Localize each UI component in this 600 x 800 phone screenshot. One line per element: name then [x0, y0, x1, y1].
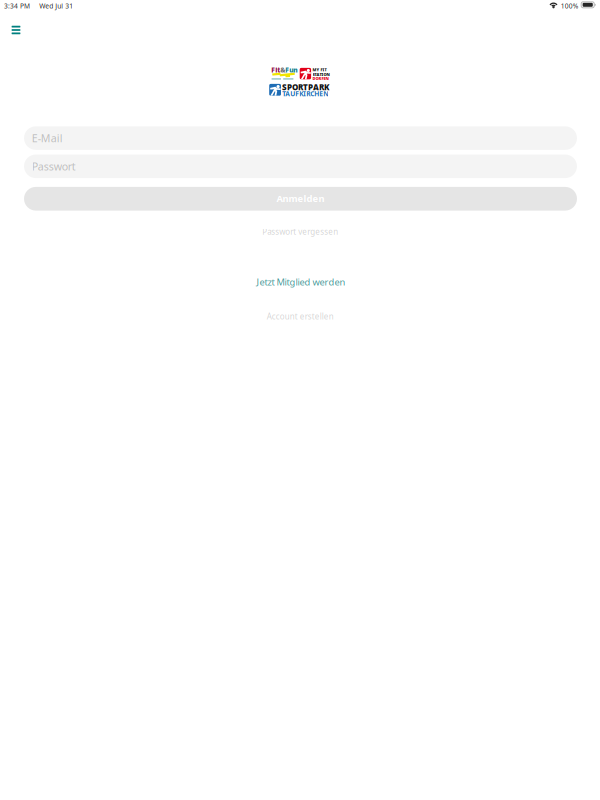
staticText: 100% — [561, 1, 579, 10]
staticText: STATION — [312, 72, 329, 77]
staticText: E-Mail — [32, 131, 63, 145]
button[interactable]: Menu — [2, 18, 30, 42]
staticText: Wed Jul 31 — [39, 1, 73, 10]
button[interactable]: Passwort — [24, 154, 577, 178]
button[interactable]: Account erstellen — [261, 309, 340, 324]
staticText: TAUFKIRCHEN — [282, 89, 328, 98]
button[interactable]: Jetzt Mitglied werden — [251, 274, 352, 290]
staticText: Account erstellen — [267, 311, 334, 322]
staticText: Anmelden — [276, 192, 324, 205]
button[interactable]: E-Mail — [24, 126, 577, 150]
staticText: 3:34 PM — [4, 1, 30, 10]
staticText: Passwort vergessen — [262, 226, 338, 237]
staticText: SPORTPARK — [282, 82, 329, 92]
staticText: Jetzt Mitglied werden — [257, 276, 346, 288]
staticText: & — [280, 65, 285, 74]
staticText: Fun — [285, 65, 297, 74]
staticText: Passwort — [32, 159, 76, 173]
button[interactable]: Anmelden — [24, 187, 577, 211]
staticText: Fit — [271, 65, 280, 74]
staticText: DORFEN — [312, 76, 328, 81]
button[interactable]: Passwort vergessen — [256, 224, 344, 239]
staticText: MY FIT — [312, 67, 326, 72]
